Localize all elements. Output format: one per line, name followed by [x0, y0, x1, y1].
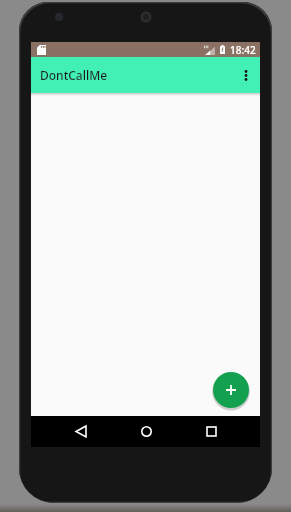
button[interactable] [61, 416, 101, 447]
button[interactable] [191, 416, 231, 447]
button[interactable] [213, 372, 249, 408]
staticText: 18:42 [230, 43, 256, 57]
button[interactable] [234, 63, 258, 87]
button[interactable] [126, 416, 166, 447]
staticText: DontCallMe [40, 67, 108, 83]
